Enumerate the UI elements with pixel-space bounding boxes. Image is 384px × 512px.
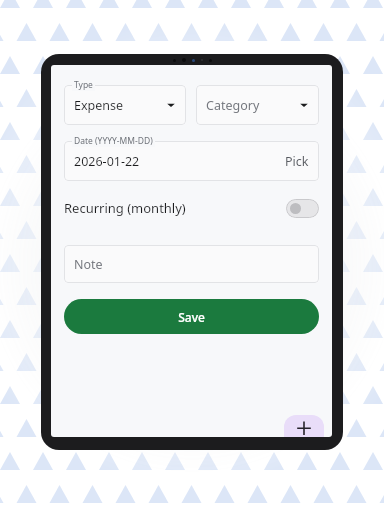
button[interactable]: Add transaction xyxy=(284,415,324,437)
staticText: Note xyxy=(74,256,103,273)
button[interactable]: Pick xyxy=(285,153,309,170)
staticText: Save xyxy=(178,309,205,325)
button[interactable]: 2026-01-22 xyxy=(64,135,319,181)
staticText: 2026-01-22 xyxy=(74,153,140,170)
staticText: Recurring (monthly) xyxy=(64,199,186,217)
staticText: Pick xyxy=(285,153,309,170)
button[interactable]: Recurring (monthly) xyxy=(64,195,319,221)
button[interactable]: Expense xyxy=(64,79,186,125)
staticText: Expense xyxy=(74,97,124,114)
button[interactable]: Note xyxy=(64,245,319,283)
staticText: Date (YYYY-MM-DD) xyxy=(74,135,153,147)
staticText: Category xyxy=(206,97,260,114)
staticText: Type xyxy=(74,79,93,91)
button[interactable]: Category xyxy=(196,79,319,125)
button[interactable]: Recurring monthly toggle xyxy=(286,199,319,218)
button[interactable]: Save xyxy=(64,299,319,334)
